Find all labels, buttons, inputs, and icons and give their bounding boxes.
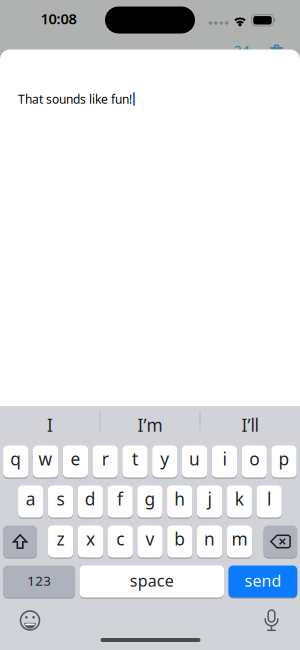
staticText: x — [86, 527, 95, 550]
staticText: i — [222, 447, 226, 470]
button[interactable]: I’m — [102, 410, 198, 440]
staticText: k — [235, 487, 244, 510]
staticText: 10:08 — [40, 9, 76, 28]
staticText: v — [145, 527, 154, 550]
staticText: z — [57, 527, 65, 550]
button[interactable]: g — [137, 484, 162, 518]
button[interactable] — [15, 605, 45, 635]
button[interactable]: k — [227, 484, 252, 518]
staticText: w — [39, 447, 53, 470]
staticText: l — [267, 487, 271, 510]
button[interactable]: l — [256, 484, 282, 518]
button[interactable]: n — [197, 524, 222, 558]
button[interactable]: y — [152, 444, 177, 478]
button[interactable]: I — [2, 410, 98, 440]
button[interactable] — [3, 524, 37, 558]
staticText: c — [116, 527, 124, 550]
staticText: u — [189, 447, 200, 470]
button[interactable]: j — [197, 484, 222, 518]
button[interactable]: I’ll — [202, 410, 298, 440]
button[interactable]: e — [63, 444, 88, 478]
staticText: I’m — [137, 413, 162, 436]
staticText: f — [117, 487, 123, 510]
button[interactable]: p — [271, 444, 297, 478]
button[interactable] — [256, 605, 286, 635]
button[interactable]: send — [228, 564, 297, 598]
staticText: g — [144, 487, 155, 510]
staticText: I’ll — [241, 413, 258, 436]
button[interactable]: o — [242, 444, 267, 478]
staticText: t — [132, 447, 138, 470]
staticText: I — [47, 413, 53, 436]
staticText: a — [26, 487, 36, 510]
button[interactable]: x — [78, 524, 103, 558]
button[interactable]: i — [212, 444, 237, 478]
staticText: p — [278, 447, 289, 470]
staticText: o — [249, 447, 259, 470]
button[interactable] — [264, 524, 297, 558]
staticText: e — [70, 447, 80, 470]
staticText: m — [231, 527, 247, 550]
button[interactable]: q — [3, 444, 28, 478]
button[interactable]: v — [137, 524, 163, 558]
button[interactable]: t — [122, 444, 148, 478]
staticText: space — [130, 570, 174, 591]
staticText: 123 — [27, 572, 51, 589]
button[interactable]: u — [182, 444, 207, 478]
staticText: r — [102, 447, 109, 470]
button[interactable]: s — [48, 484, 73, 518]
button[interactable]: h — [167, 484, 192, 518]
button[interactable]: b — [167, 524, 192, 558]
staticText: d — [85, 487, 96, 510]
button[interactable]: z — [48, 524, 73, 558]
staticText: n — [204, 527, 215, 550]
staticText: h — [174, 487, 185, 510]
button[interactable]: f — [107, 484, 133, 518]
button[interactable]: d — [78, 484, 103, 518]
staticText: q — [10, 447, 21, 470]
staticText: j — [207, 487, 211, 510]
button[interactable]: c — [108, 524, 133, 558]
button[interactable]: r — [93, 444, 118, 478]
staticText: That sounds like fun! — [18, 91, 132, 107]
staticText: y — [160, 447, 169, 470]
staticText: s — [56, 487, 64, 510]
staticText: send — [244, 570, 281, 591]
staticText: 24 — [233, 41, 249, 60]
button[interactable]: m — [227, 524, 252, 558]
button[interactable]: 123 — [3, 564, 75, 598]
button[interactable]: space — [80, 564, 224, 598]
staticText: b — [174, 527, 185, 550]
button[interactable]: a — [18, 484, 43, 518]
button[interactable]: w — [33, 444, 58, 478]
